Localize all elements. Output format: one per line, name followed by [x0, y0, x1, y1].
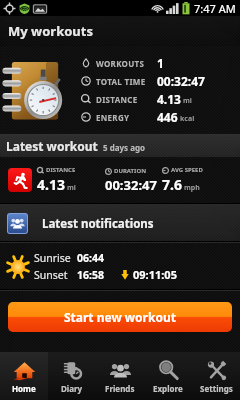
button[interactable]: Friends	[96, 352, 144, 400]
staticText: 1	[157, 55, 164, 71]
staticText: WORKOUTS	[96, 58, 157, 69]
staticText: DURATION	[114, 167, 147, 175]
staticText: DISTANCE	[46, 166, 76, 174]
staticText: Latest workout	[6, 138, 98, 154]
staticText: Settings	[200, 383, 233, 394]
button[interactable]: WORKOUTS	[0, 46, 240, 134]
button[interactable]: Start new workout	[8, 302, 232, 332]
staticText: 446	[157, 109, 178, 125]
staticText: TOTAL TIME	[96, 76, 157, 87]
staticText: Start new workout	[64, 309, 176, 325]
staticText: Explore	[153, 383, 183, 394]
staticText: 09:11:05	[133, 267, 177, 282]
button[interactable]: Diary	[48, 352, 96, 400]
staticText: Sunset	[34, 268, 77, 282]
button[interactable]: Explore	[144, 352, 192, 400]
button[interactable]: Settings	[192, 352, 240, 400]
staticText: 06:44	[77, 251, 104, 265]
staticText: Friends	[105, 383, 135, 394]
staticText: DISTANCE	[96, 94, 157, 105]
button[interactable]: Home	[0, 352, 48, 400]
button[interactable]: Latest notifications	[0, 205, 240, 241]
staticText: 00:32:47	[157, 73, 205, 89]
staticText: Home	[12, 383, 36, 394]
staticText: mph	[184, 183, 200, 193]
staticText: Sunrise	[34, 251, 77, 265]
staticText: 4.13	[37, 175, 65, 194]
staticText: Diary	[61, 383, 83, 394]
staticText: 4.13	[157, 91, 181, 107]
staticText: mi	[183, 96, 192, 106]
staticText: kcal	[180, 114, 195, 124]
button[interactable]: DISTANCE	[0, 157, 240, 203]
staticText: 00:32:47	[105, 176, 157, 194]
staticText: Latest notifications	[42, 216, 154, 232]
staticText: mi	[67, 183, 76, 193]
staticText: 16:58	[77, 268, 104, 282]
staticText: 7.6	[162, 175, 182, 194]
staticText: AVG SPEED	[171, 166, 203, 174]
button[interactable]: Sunrise	[0, 243, 240, 289]
staticText: 7:47 AM	[194, 1, 236, 16]
staticText: 5 days ago	[103, 142, 146, 153]
staticText: ENERGY	[96, 112, 157, 123]
staticText: My workouts	[8, 22, 93, 40]
